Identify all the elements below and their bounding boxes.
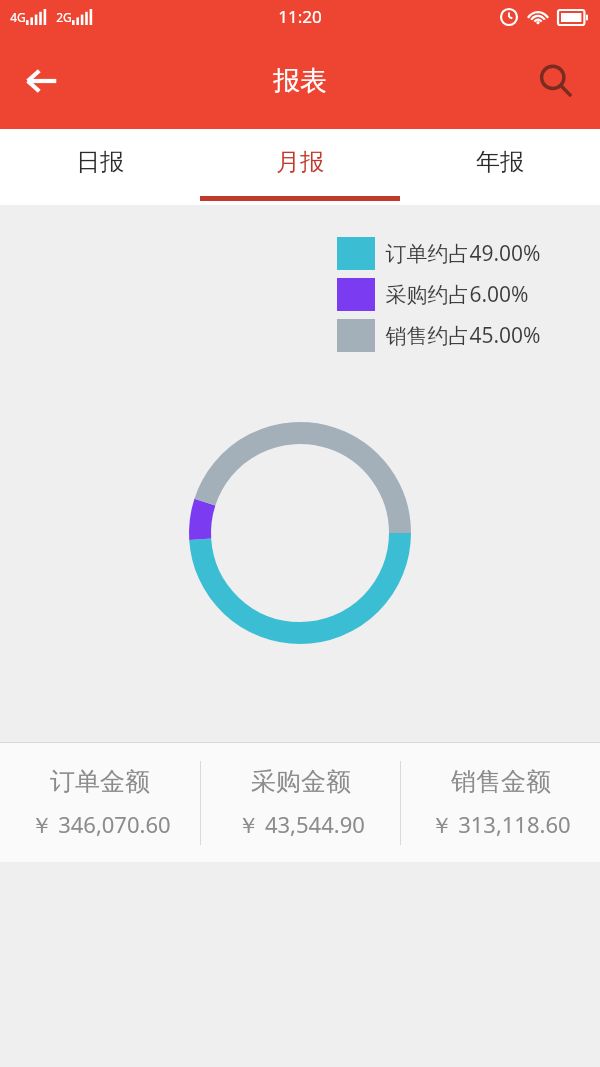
button[interactable]: 采购金额	[201, 743, 400, 862]
staticText: 11:20	[278, 5, 322, 28]
staticText: 2G	[56, 9, 72, 25]
button[interactable]: 年报	[400, 129, 600, 205]
staticText: 订单金额	[50, 766, 150, 797]
staticText: 订单约占49.00%	[385, 239, 541, 268]
staticText: ￥ 43,544.90	[237, 809, 365, 839]
button[interactable]: Back	[12, 51, 72, 111]
staticText: 销售约占45.00%	[385, 321, 541, 350]
staticText: 销售金额	[451, 766, 551, 797]
button[interactable]: 订单金额	[0, 743, 200, 862]
staticText: 月报	[276, 147, 324, 177]
button[interactable]: 销售金额	[401, 743, 600, 862]
staticText: 采购约占6.00%	[385, 280, 529, 309]
staticText: 采购金额	[251, 766, 351, 797]
staticText: ￥ 313,118.60	[430, 809, 571, 839]
staticText: 年报	[476, 147, 524, 177]
staticText: 4G	[10, 9, 26, 25]
button[interactable]: 月报	[200, 129, 400, 205]
staticText: 日报	[76, 147, 124, 177]
button[interactable]: Search	[526, 51, 586, 111]
staticText: 报表	[273, 64, 327, 98]
button[interactable]: 日报	[0, 129, 200, 205]
staticText: ￥ 346,070.60	[30, 809, 171, 839]
